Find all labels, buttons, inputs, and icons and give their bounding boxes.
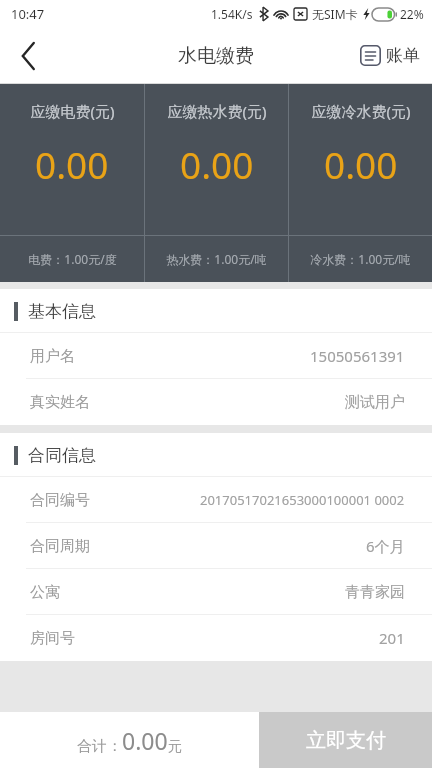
button[interactable]: 合同编号 — [0, 477, 432, 523]
button[interactable]: 合计： — [0, 712, 259, 768]
staticText: 房间号 — [30, 629, 75, 648]
staticText: 合同编号 — [30, 491, 90, 510]
staticText: 6个月 — [366, 536, 405, 556]
staticText: 热水费：1.00元/吨 — [166, 251, 267, 267]
staticText: 冷水费：1.00元/吨 — [310, 251, 411, 267]
staticText: 真实姓名 — [30, 393, 90, 412]
staticText: 青青家园 — [345, 583, 405, 602]
staticText: 账单 — [386, 45, 420, 66]
button[interactable]: 合同周期 — [0, 523, 432, 569]
staticText: 基本信息 — [28, 301, 96, 322]
staticText: 0.00 — [35, 139, 109, 189]
staticText: 元 — [168, 738, 182, 756]
staticText: 公寓 — [30, 583, 60, 602]
staticText: 水电缴费 — [178, 44, 254, 68]
staticText: 立即支付 — [306, 728, 386, 753]
button[interactable]: 账单 — [350, 28, 432, 83]
staticText: 无SIM卡 — [312, 6, 358, 22]
staticText: 测试用户 — [345, 393, 405, 412]
staticText: 10:47 — [11, 5, 45, 23]
staticText: 合同周期 — [30, 537, 90, 556]
staticText: 用户名 — [30, 347, 75, 366]
button[interactable]: 立即支付 — [259, 712, 432, 768]
staticText: 应缴电费(元) — [30, 101, 115, 121]
staticText: 合计： — [77, 737, 122, 756]
staticText: 0.00 — [122, 725, 168, 756]
staticText: 0.00 — [180, 139, 254, 189]
staticText: 电费：1.00元/度 — [28, 251, 117, 267]
staticText: 15050561391 — [310, 346, 405, 366]
staticText: 应缴热水费(元) — [167, 101, 267, 121]
staticText: 22% — [400, 6, 424, 22]
staticText: 应缴冷水费(元) — [311, 101, 411, 121]
staticText: 1.54K/s — [211, 6, 253, 22]
button[interactable]: 真实姓名 — [0, 379, 432, 425]
button[interactable]: 房间号 — [0, 615, 432, 661]
button[interactable]: 公寓 — [0, 569, 432, 615]
staticText: 201 — [379, 628, 405, 648]
button[interactable]: 用户名 — [0, 333, 432, 379]
staticText: 合同信息 — [28, 445, 96, 466]
staticText: 20170517021653000100001 0002 — [200, 491, 405, 509]
button[interactable]: Back — [0, 28, 56, 83]
staticText: 0.00 — [324, 139, 398, 189]
